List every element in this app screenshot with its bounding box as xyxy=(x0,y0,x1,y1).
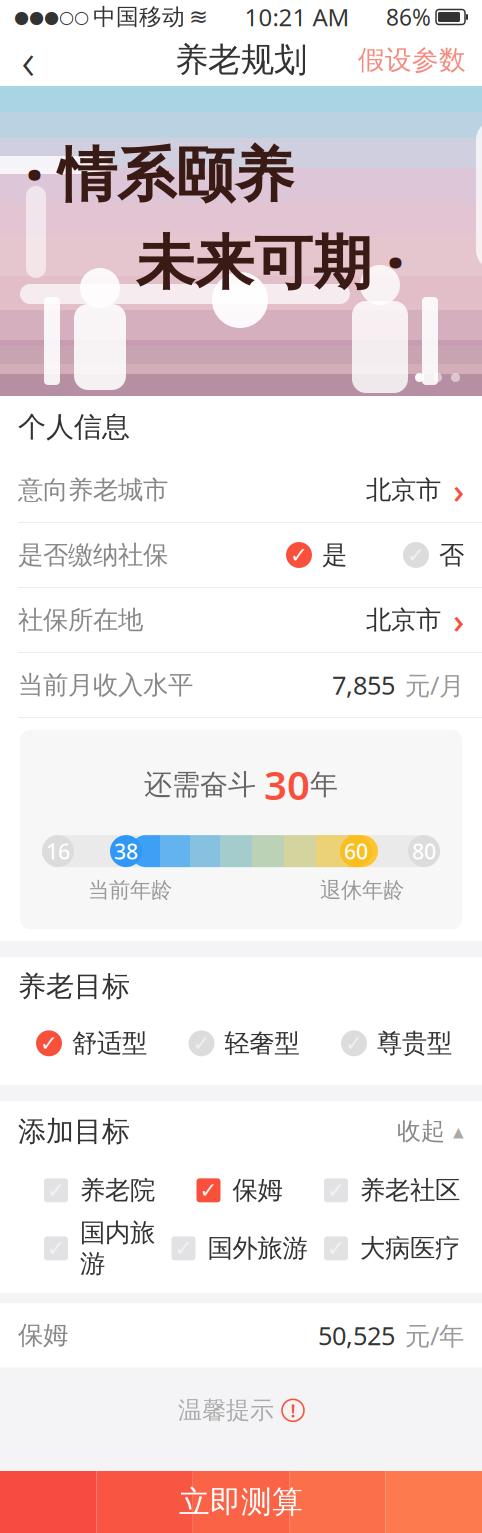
staticText: 立即测算 xyxy=(179,1483,303,1521)
staticText: 国内旅游 xyxy=(80,1217,155,1279)
staticText: 养老目标 xyxy=(18,969,130,1003)
staticText: 还需奋斗 xyxy=(144,767,264,802)
button[interactable]: ✓ xyxy=(286,539,347,570)
staticText: ✓ xyxy=(47,1236,65,1260)
staticText: 假设参数 xyxy=(358,44,466,76)
staticText: ●●●○○ xyxy=(14,7,89,27)
button[interactable]: ✓ xyxy=(188,1028,299,1059)
staticText: 年 xyxy=(310,767,338,802)
staticText: ✓ xyxy=(174,1236,192,1260)
staticText: 舒适型 xyxy=(72,1028,147,1059)
button[interactable]: ✓ xyxy=(341,1028,452,1059)
staticText: 80 xyxy=(412,837,436,865)
button[interactable]: ✓ xyxy=(36,1028,147,1059)
staticText: 个人信息 xyxy=(18,410,130,444)
staticText: 38 xyxy=(114,837,138,865)
staticText: ✓ xyxy=(199,1178,217,1202)
staticText: ✓ xyxy=(47,1178,65,1202)
button[interactable]: 假设参数 xyxy=(342,34,482,86)
staticText: 当前年龄 xyxy=(88,877,172,903)
staticText: ✓ xyxy=(290,543,308,567)
staticText: ‹ xyxy=(21,26,34,94)
button[interactable]: ✓ xyxy=(324,1233,460,1264)
staticText: · 情系颐养 xyxy=(26,134,294,212)
staticText: 10:21 AM xyxy=(244,1,349,33)
staticText: 未来可期 · xyxy=(136,222,404,300)
staticText: 否 xyxy=(439,539,464,570)
staticText: ✓ xyxy=(407,543,425,567)
staticText: ✓ xyxy=(327,1236,345,1260)
staticText: 养老院 xyxy=(80,1175,155,1206)
staticText: 大病医疗 xyxy=(360,1233,460,1264)
staticText: 轻奢型 xyxy=(224,1028,299,1059)
staticText: ▴ xyxy=(453,1119,464,1143)
staticText: › xyxy=(453,467,464,513)
button[interactable]: Back xyxy=(0,34,56,86)
staticText: 温馨提示 xyxy=(178,1396,274,1425)
button[interactable]: ✓ xyxy=(171,1233,307,1264)
staticText: ! xyxy=(290,1398,295,1423)
staticText: 北京市 xyxy=(366,604,441,635)
button[interactable]: 收起 xyxy=(397,1117,464,1146)
staticText: ✓ xyxy=(327,1178,345,1202)
button[interactable]: ✓ xyxy=(403,539,464,570)
staticText: 国外旅游 xyxy=(207,1233,307,1264)
button[interactable]: 意向养老城市 xyxy=(0,458,482,522)
button[interactable]: 温馨提示 xyxy=(178,1367,304,1453)
staticText: ≋ xyxy=(189,4,208,30)
staticText: › xyxy=(453,597,464,643)
staticText: 是否缴纳社保 xyxy=(18,539,168,570)
staticText: 养老社区 xyxy=(360,1175,460,1206)
staticText: 50,525 xyxy=(318,1318,395,1352)
button[interactable]: ✓ xyxy=(196,1175,282,1206)
staticText: 30 xyxy=(264,758,310,811)
staticText: 86% xyxy=(386,2,431,32)
staticText: 保姆 xyxy=(18,1320,68,1351)
staticText: 添加目标 xyxy=(18,1114,130,1148)
staticText: 尊贵型 xyxy=(377,1028,452,1059)
button[interactable]: ✓ xyxy=(324,1175,460,1206)
staticText: ✓ xyxy=(192,1031,210,1055)
staticText: 北京市 xyxy=(366,474,441,505)
staticText: 元/月 xyxy=(405,668,464,702)
staticText: 社保所在地 xyxy=(18,604,143,635)
staticText: 当前月收入水平 xyxy=(18,669,193,700)
staticText: ✓ xyxy=(345,1031,363,1055)
staticText: 元/年 xyxy=(405,1318,464,1352)
staticText: 意向养老城市 xyxy=(18,474,168,505)
button[interactable]: 社保所在地 xyxy=(0,588,482,652)
staticText: 养老规划 xyxy=(175,39,307,80)
button[interactable]: 立即测算 xyxy=(0,1471,482,1533)
staticText: 16 xyxy=(46,837,70,865)
button[interactable]: ✓ xyxy=(44,1175,155,1206)
staticText: 收起 xyxy=(397,1117,445,1146)
staticText: 是 xyxy=(322,539,347,570)
staticText: 7,855 xyxy=(332,668,395,702)
button[interactable]: ✓ xyxy=(44,1217,155,1279)
staticText: 退休年龄 xyxy=(320,877,404,903)
staticText: 60 xyxy=(344,837,368,865)
staticText: 保姆 xyxy=(232,1175,282,1206)
staticText: 中国移动 xyxy=(93,3,185,31)
staticText: ✓ xyxy=(40,1031,58,1055)
